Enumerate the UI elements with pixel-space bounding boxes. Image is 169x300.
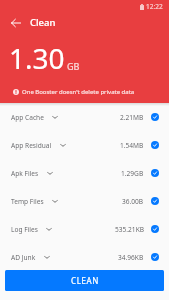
staticText: App Cache	[11, 113, 44, 122]
staticText: Temp Files	[11, 197, 44, 206]
staticText: Log Files	[11, 225, 38, 234]
staticText: Apk Files	[11, 169, 39, 178]
staticText: 2.21MB	[120, 113, 144, 122]
staticText: GB	[67, 60, 80, 72]
staticText: 36.00B	[122, 197, 144, 206]
button[interactable]: CLEAN	[5, 270, 164, 291]
button[interactable]: App Cache	[0, 103, 169, 131]
staticText: AD Junk	[11, 253, 36, 262]
staticText: 12:22	[146, 2, 163, 11]
staticText: 1.30	[9, 39, 65, 77]
button[interactable]: Log Files	[0, 215, 169, 243]
staticText: App Residual	[11, 141, 52, 150]
button[interactable]: AD Junk	[0, 243, 169, 271]
staticText: Clean	[30, 16, 56, 29]
button[interactable]: Apk Files	[0, 159, 169, 187]
staticText: 1.29GB	[121, 169, 144, 178]
staticText: 34.96KB	[118, 253, 144, 262]
button[interactable]: Back	[3, 10, 29, 36]
button[interactable]: App Residual	[0, 131, 169, 159]
staticText: 535.21KB	[115, 225, 144, 234]
staticText: 1.54MB	[120, 141, 144, 150]
staticText: One Booster doesn't delete private data	[22, 88, 135, 96]
button[interactable]: Temp Files	[0, 187, 169, 215]
staticText: CLEAN	[71, 275, 99, 286]
